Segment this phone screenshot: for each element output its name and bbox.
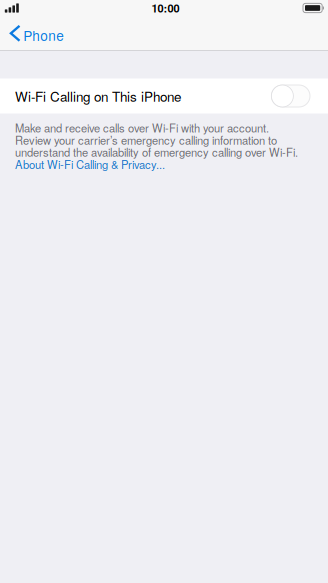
staticText: understand the availability of emergency… (15, 144, 298, 160)
staticText: Review your carrier’s emergency calling … (15, 132, 277, 148)
staticText: Phone (23, 25, 64, 45)
button[interactable]: About Wi-Fi Calling & Privacy... (15, 158, 165, 170)
staticText: 10:00 (151, 0, 179, 16)
button[interactable]: Phone (0, 20, 74, 50)
button[interactable]: Wi-Fi Calling on This iPhone (0, 78, 328, 113)
staticText: Make and receive calls over Wi-Fi with y… (15, 120, 269, 136)
staticText: Wi-Fi Calling on This iPhone (15, 86, 181, 106)
staticText: About Wi-Fi Calling & Privacy... (15, 156, 165, 172)
